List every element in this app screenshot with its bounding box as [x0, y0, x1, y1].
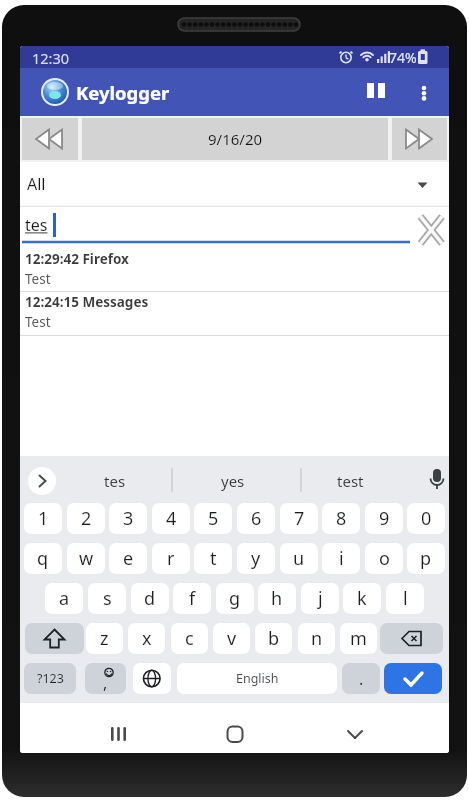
button[interactable]: All — [20, 162, 449, 207]
button[interactable]: n — [298, 623, 335, 654]
staticText: 6 — [251, 506, 262, 531]
button[interactable]: 9 — [365, 503, 403, 534]
staticText: 8 — [336, 506, 347, 531]
button[interactable]: x — [128, 623, 165, 654]
button[interactable] — [82, 118, 388, 160]
button[interactable]: c — [171, 623, 208, 654]
button[interactable]: t — [194, 543, 232, 574]
button[interactable]: . — [342, 663, 380, 694]
staticText: b — [268, 626, 280, 651]
staticText: yes — [221, 471, 245, 491]
button[interactable]: a — [45, 583, 83, 614]
button[interactable]: 12:29:42 Firefox — [20, 249, 449, 291]
staticText: tes — [25, 214, 48, 236]
button[interactable]: o — [365, 543, 403, 574]
button[interactable]: 8 — [322, 503, 360, 534]
button[interactable]: p — [407, 543, 445, 574]
staticText: l — [403, 586, 408, 611]
button[interactable]: q — [24, 543, 62, 574]
staticText: g — [229, 586, 241, 611]
staticText: y — [251, 546, 261, 571]
staticText: Keylogger — [76, 80, 170, 105]
button[interactable]: f — [173, 583, 211, 614]
button[interactable] — [98, 713, 138, 753]
staticText: f — [189, 586, 196, 611]
button[interactable]: v — [213, 623, 250, 654]
staticText: z — [100, 626, 109, 651]
button[interactable] — [75, 467, 155, 495]
button[interactable]: u — [280, 543, 318, 574]
button[interactable]: 2 — [67, 503, 105, 534]
staticText: x — [142, 626, 152, 651]
button[interactable]: h — [258, 583, 296, 614]
staticText: . — [359, 668, 364, 690]
button[interactable]: 12:24:15 Messages — [20, 292, 449, 334]
button[interactable]: y — [237, 543, 275, 574]
button[interactable] — [133, 663, 171, 694]
staticText: p — [420, 546, 432, 571]
staticText: o — [379, 546, 390, 571]
staticText: e — [123, 546, 134, 571]
staticText: English — [236, 670, 279, 687]
button[interactable] — [22, 118, 78, 160]
staticText: 3 — [123, 506, 134, 531]
staticText: n — [311, 626, 323, 651]
staticText: 4 — [166, 506, 177, 531]
staticText: All — [27, 173, 46, 195]
staticText: r — [167, 546, 175, 571]
button[interactable]: 7 — [280, 503, 318, 534]
button[interactable]: z — [86, 623, 123, 654]
staticText: 12:24:15 Messages — [25, 293, 149, 311]
button[interactable] — [392, 118, 447, 160]
button[interactable]: tes — [20, 207, 449, 247]
staticText: Test — [25, 313, 51, 331]
button[interactable]: b — [255, 623, 292, 654]
button[interactable]: 5 — [194, 503, 232, 534]
button[interactable] — [335, 713, 375, 753]
button[interactable] — [25, 623, 84, 654]
staticText: u — [293, 546, 305, 571]
button[interactable] — [193, 467, 273, 495]
staticText: 5 — [208, 506, 219, 531]
staticText: ?123 — [37, 670, 64, 687]
button[interactable]: g — [216, 583, 254, 614]
staticText: i — [339, 546, 344, 571]
button[interactable]: 1 — [24, 503, 62, 534]
button[interactable] — [85, 663, 126, 694]
staticText: 0 — [421, 506, 432, 531]
button[interactable] — [310, 467, 390, 495]
button[interactable]: 4 — [152, 503, 190, 534]
staticText: 74% — [389, 48, 417, 67]
staticText: s — [103, 586, 112, 611]
staticText: c — [185, 626, 194, 651]
button[interactable]: l — [386, 583, 424, 614]
button[interactable]: d — [131, 583, 169, 614]
staticText: 2 — [81, 506, 92, 531]
button[interactable] — [410, 72, 438, 112]
button[interactable]: w — [67, 543, 105, 574]
button[interactable]: 6 — [237, 503, 275, 534]
staticText: 7 — [294, 506, 305, 531]
button[interactable] — [215, 713, 255, 753]
staticText: t — [210, 546, 217, 571]
staticText: 1 — [38, 506, 49, 531]
staticText: Test — [25, 270, 51, 288]
button[interactable] — [358, 72, 394, 112]
staticText: m — [350, 626, 367, 651]
staticText: test — [337, 471, 364, 491]
staticText: h — [271, 586, 283, 611]
button[interactable] — [384, 663, 442, 694]
button[interactable] — [380, 623, 443, 654]
button[interactable]: r — [152, 543, 190, 574]
button[interactable]: i — [322, 543, 360, 574]
button[interactable]: e — [109, 543, 147, 574]
button[interactable] — [28, 467, 56, 495]
button[interactable]: ?123 — [24, 663, 76, 694]
button[interactable]: m — [340, 623, 377, 654]
button[interactable]: 0 — [407, 503, 445, 534]
button[interactable]: English — [177, 663, 337, 694]
button[interactable]: j — [301, 583, 339, 614]
button[interactable]: k — [343, 583, 381, 614]
button[interactable]: 3 — [109, 503, 147, 534]
button[interactable]: s — [88, 583, 126, 614]
